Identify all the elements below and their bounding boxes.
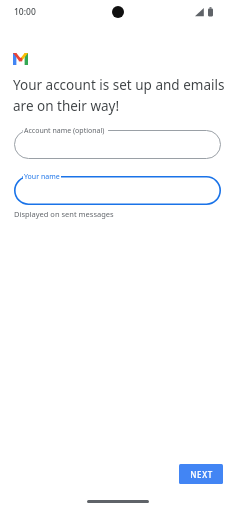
staticText: Account name (optional) xyxy=(24,126,105,136)
button[interactable]: Your name xyxy=(14,176,221,205)
button[interactable]: NEXT xyxy=(179,464,223,484)
staticText: NEXT xyxy=(190,469,213,480)
staticText: Displayed on sent messages xyxy=(14,209,114,219)
staticText: Your account is set up and emails are on… xyxy=(13,76,225,115)
staticText: Your name xyxy=(24,172,60,182)
button[interactable]: Account name (optional) xyxy=(14,130,221,159)
staticText: 10:00 xyxy=(14,6,36,18)
